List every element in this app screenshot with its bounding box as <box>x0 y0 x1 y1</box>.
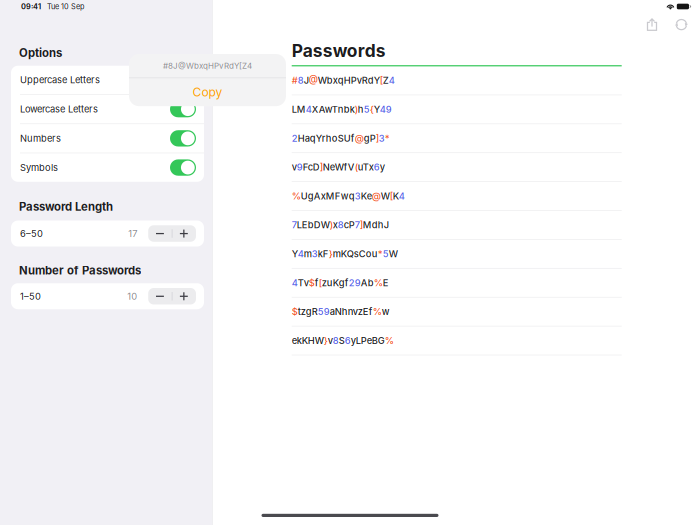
staticText: Options <box>19 46 62 60</box>
button[interactable]: v9FcD]NeWfV(uTx6y <box>213 153 700 181</box>
button[interactable]: Regenerate passwords <box>675 18 688 31</box>
button[interactable]: $tzgR59aNhnvzEf%w <box>213 298 700 326</box>
button[interactable]: 7LEbDW)x8cP7]MdhJ <box>213 211 700 239</box>
staticText: 2HaqYrhoSUf@gP]3* <box>292 133 390 144</box>
button[interactable]: LM4XAwTnbk)h5{Y49 <box>213 95 700 123</box>
button[interactable]: Share <box>646 18 658 31</box>
button[interactable]: Decrease <box>148 288 172 304</box>
staticText: Password Length <box>19 200 113 213</box>
staticText: 10 <box>127 291 137 302</box>
button[interactable]: #8J@WbxqHPvRdY[Z4 <box>213 66 700 95</box>
button[interactable]: Increase <box>172 225 196 242</box>
staticText: 6–50 <box>20 228 43 239</box>
staticText: Y4m3kF}mKQsCou*5W <box>292 248 398 259</box>
staticText: #8J@WbxqHPvRdY[Z4 <box>163 61 252 71</box>
staticText: Copy <box>192 85 222 99</box>
staticText: v9FcD]NeWfV(uTx6y <box>292 161 385 173</box>
staticText: 7LEbDW)x8cP7]MdhJ <box>292 219 389 231</box>
staticText: Tue 10 Sep <box>47 2 84 11</box>
button[interactable]: 2HaqYrhoSUf@gP]3* <box>213 124 700 152</box>
staticText: Passwords <box>292 40 386 61</box>
staticText: 09:41 <box>21 2 41 11</box>
button[interactable]: Decrease <box>148 225 172 242</box>
button[interactable]: Uppercase Letters <box>11 66 204 94</box>
button[interactable]: Numbers <box>11 124 204 153</box>
button[interactable]: Y4m3kF}mKQsCou*5W <box>213 240 700 268</box>
staticText: 1–50 <box>20 291 41 302</box>
button[interactable]: Symbols <box>11 153 204 182</box>
staticText: Number of Passwords <box>19 263 141 277</box>
staticText: LM4XAwTnbk)h5{Y49 <box>292 104 392 115</box>
staticText: #8J@WbxqHPvRdY[Z4 <box>292 75 395 86</box>
staticText: $tzgR59aNhnvzEf%w <box>292 306 390 317</box>
staticText: 17 <box>128 228 137 239</box>
button[interactable]: 4Tv$f[zuKgf29Ab%E <box>213 269 700 297</box>
button[interactable]: %UgAxMFwq3Ke@W[K4 <box>213 182 700 210</box>
staticText: ekKHW}v8S6yLPeBG% <box>292 335 394 346</box>
staticText: Symbols <box>20 162 58 173</box>
staticText: Numbers <box>20 133 61 144</box>
button[interactable]: ekKHW}v8S6yLPeBG% <box>213 326 700 355</box>
button[interactable]: Lowercase Letters <box>11 95 204 123</box>
button[interactable]: Increase <box>172 288 196 304</box>
staticText: %UgAxMFwq3Ke@W[K4 <box>292 190 405 202</box>
staticText: 4Tv$f[zuKgf29Ab%E <box>292 277 389 288</box>
button[interactable]: Copy <box>129 78 286 106</box>
staticText: Lowercase Letters <box>20 103 98 115</box>
staticText: Uppercase Letters <box>20 74 100 86</box>
